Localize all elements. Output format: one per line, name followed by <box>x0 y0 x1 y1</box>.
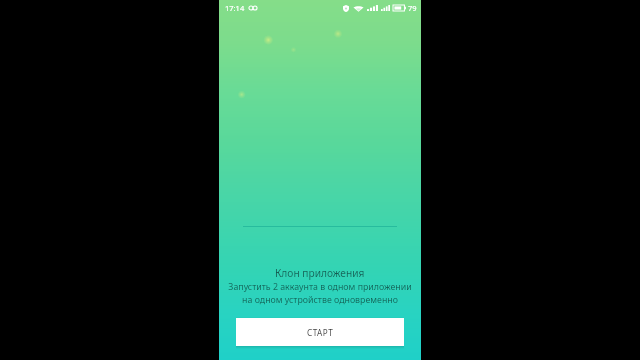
staticText: 17:14 <box>225 3 245 13</box>
staticText: 79 <box>408 3 417 13</box>
staticText: Клон приложения <box>275 266 365 280</box>
button[interactable]: СТАРТ <box>236 318 404 346</box>
staticText: СТАРТ <box>307 327 334 338</box>
staticText: Запустить 2 аккаунта в одном приложении … <box>228 281 412 305</box>
